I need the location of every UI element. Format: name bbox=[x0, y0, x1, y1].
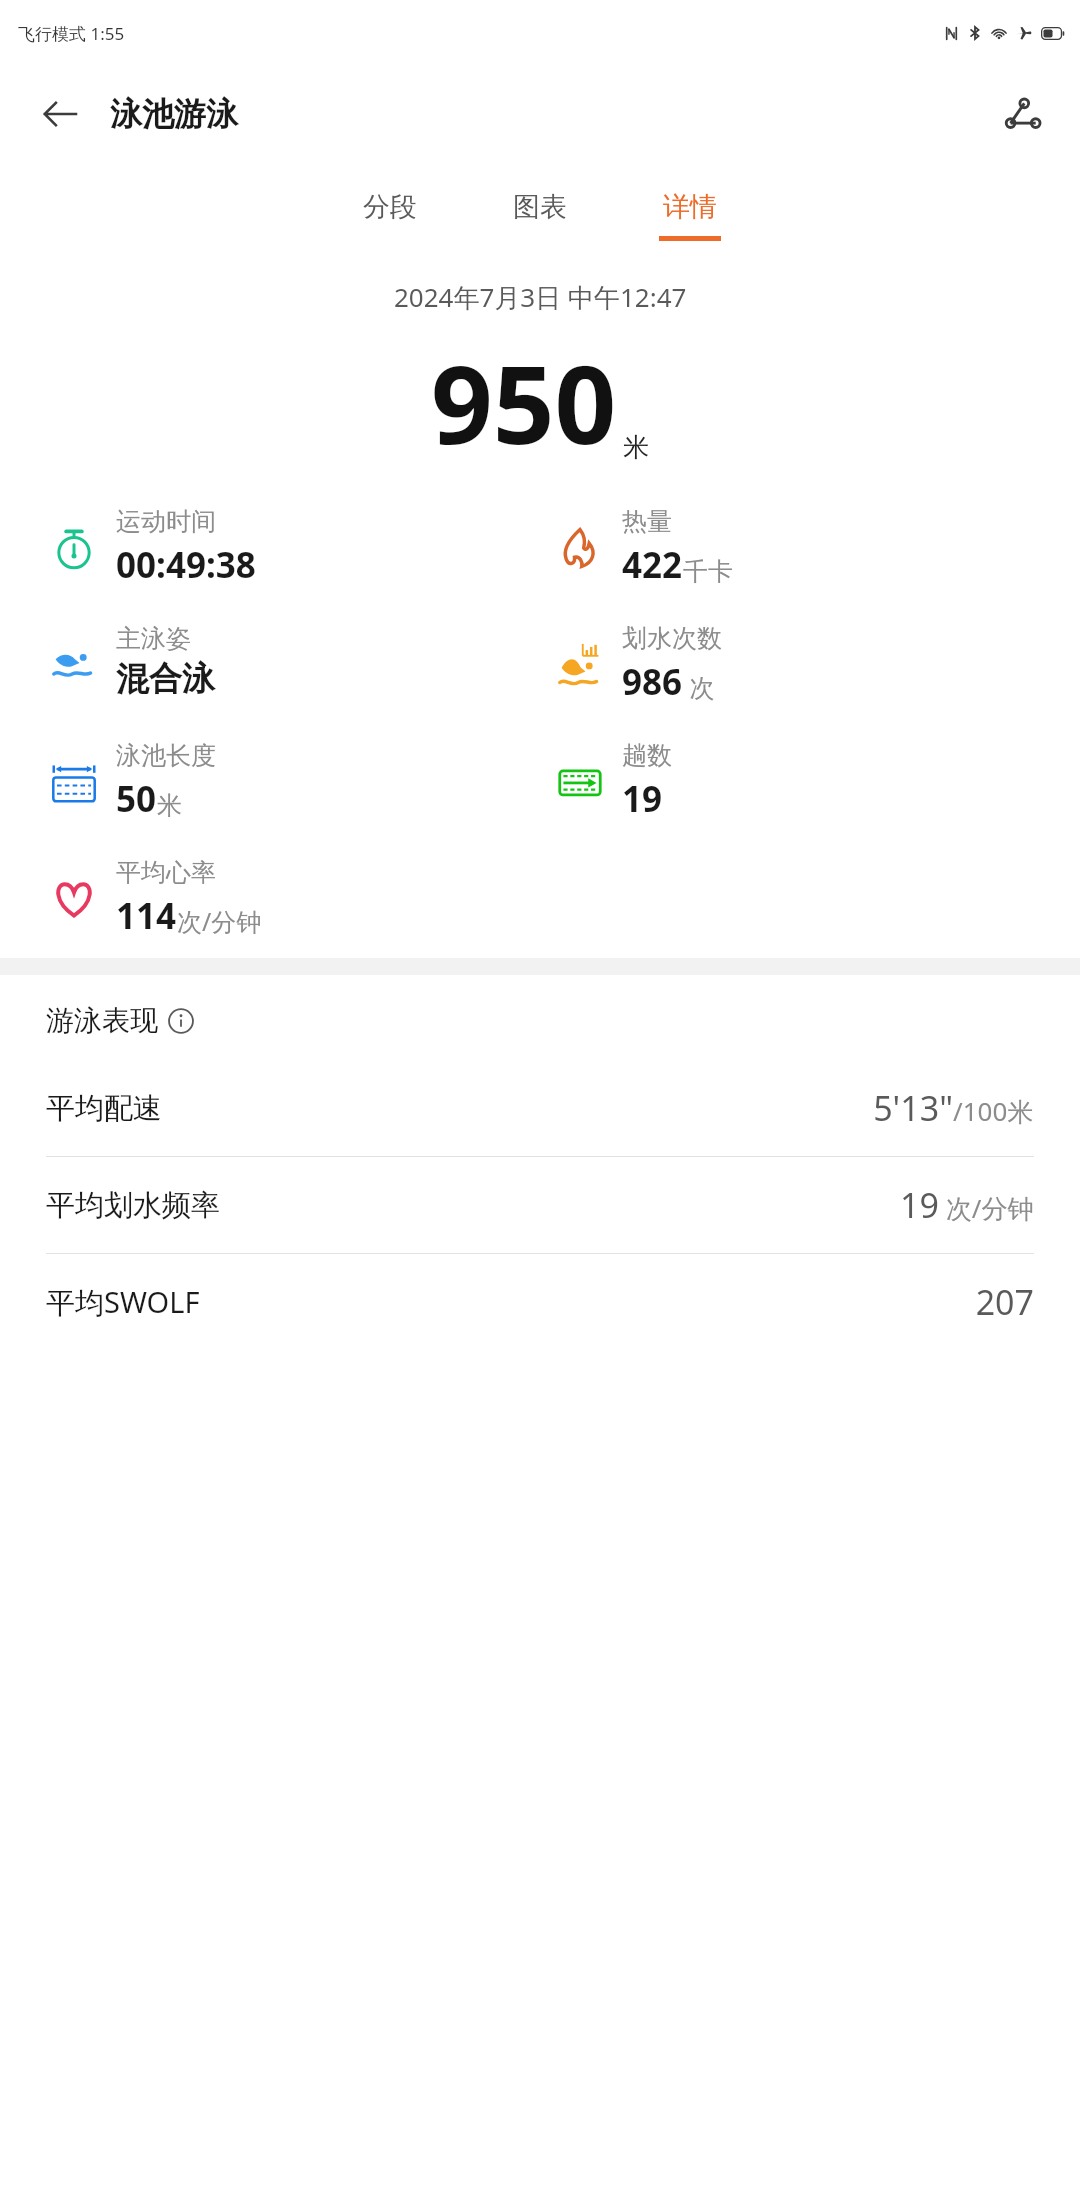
staticText: 19 bbox=[900, 1182, 939, 1228]
staticText: 次/分钟 bbox=[939, 1190, 1034, 1226]
button[interactable]: 趟数 bbox=[552, 740, 672, 823]
staticText: /100米 bbox=[953, 1093, 1034, 1129]
staticText: 平均配速 bbox=[46, 1090, 162, 1127]
staticText: 2024年7月3日 中午12:47 bbox=[394, 279, 687, 315]
staticText: 运动时间 bbox=[116, 506, 216, 537]
staticText: 米 bbox=[157, 790, 182, 821]
button[interactable]: Share bbox=[990, 82, 1054, 146]
staticText: 飞行模式 1:55 bbox=[18, 22, 125, 45]
button[interactable]: 热量 bbox=[552, 506, 733, 589]
staticText: 趟数 bbox=[622, 740, 672, 771]
staticText: 平均SWOLF bbox=[46, 1282, 200, 1322]
staticText: 950 bbox=[431, 329, 617, 476]
staticText: 游泳表现 bbox=[46, 1003, 158, 1038]
staticText: 混合泳 bbox=[116, 658, 215, 700]
staticText: 114 bbox=[116, 892, 177, 940]
button[interactable]: 平均划水频率 bbox=[0, 1157, 1080, 1253]
button[interactable]: 分段 bbox=[341, 184, 439, 247]
staticText: 19 bbox=[622, 775, 663, 823]
staticText: 分段 bbox=[363, 190, 417, 224]
staticText: 00:49:38 bbox=[116, 541, 256, 589]
staticText: 米 bbox=[623, 431, 649, 464]
staticText: 划水次数 bbox=[622, 623, 722, 654]
staticText: 泳池游泳 bbox=[110, 94, 238, 134]
button[interactable]: 平均配速 bbox=[0, 1060, 1080, 1156]
staticText: 次/分钟 bbox=[177, 904, 262, 938]
staticText: 主泳姿 bbox=[116, 623, 191, 654]
staticText: 泳池长度 bbox=[116, 740, 216, 771]
button[interactable]: 游泳表现 bbox=[0, 1003, 1080, 1038]
button[interactable]: 划水次数 bbox=[552, 623, 722, 706]
button[interactable]: 详情 bbox=[641, 184, 739, 247]
staticText: 次 bbox=[683, 670, 715, 704]
button[interactable]: 图表 bbox=[491, 184, 589, 247]
staticText: 图表 bbox=[513, 190, 567, 224]
staticText: 5'13" bbox=[873, 1085, 953, 1131]
staticText: 986 bbox=[622, 658, 683, 706]
staticText: 207 bbox=[975, 1279, 1034, 1325]
staticText: 平均划水频率 bbox=[46, 1187, 220, 1224]
button[interactable]: Back bbox=[30, 84, 90, 144]
staticText: 平均心率 bbox=[116, 857, 216, 888]
button[interactable]: 主泳姿 bbox=[46, 623, 215, 700]
staticText: 422 bbox=[622, 541, 683, 589]
staticText: 千卡 bbox=[683, 556, 733, 587]
button[interactable]: 平均SWOLF bbox=[0, 1254, 1080, 1350]
staticText: 50 bbox=[116, 775, 157, 823]
button[interactable]: 运动时间 bbox=[46, 506, 256, 589]
button[interactable]: 泳池长度 bbox=[46, 740, 216, 823]
staticText: 热量 bbox=[622, 506, 672, 537]
staticText: 详情 bbox=[663, 190, 717, 224]
button[interactable]: 平均心率 bbox=[46, 857, 262, 940]
